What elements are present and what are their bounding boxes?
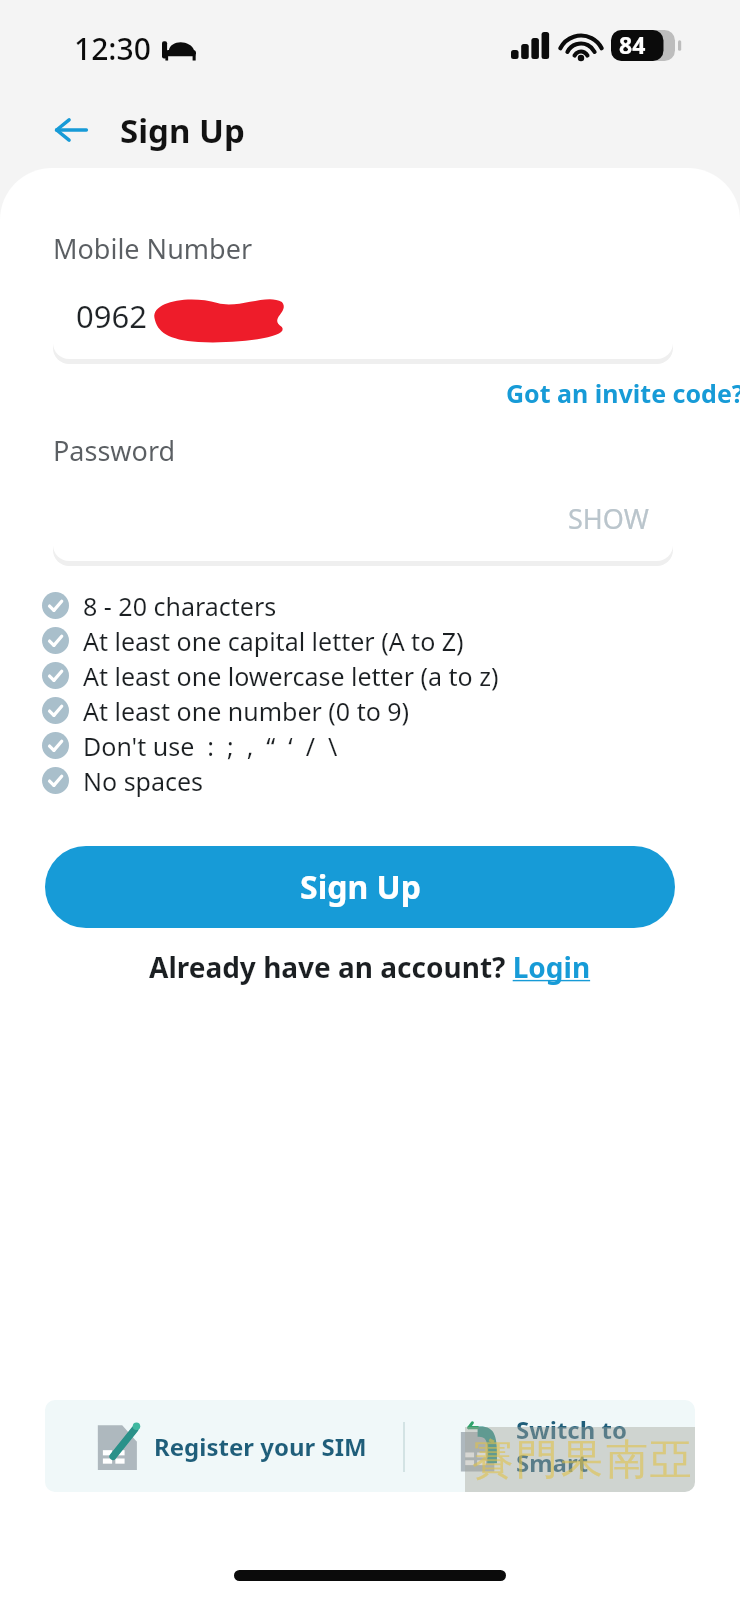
button[interactable]: SHOW	[53, 475, 673, 561]
staticText: 賽	[472, 1434, 514, 1487]
staticText: Got an invite code?	[506, 376, 740, 410]
staticText: 0962	[76, 295, 147, 337]
button[interactable]: Switch to Smart	[460, 1400, 695, 1492]
button[interactable]: SHOW	[568, 500, 649, 537]
staticText: 門	[516, 1434, 558, 1487]
staticText: Sign Up	[120, 108, 245, 153]
staticText: Don't use : ; , “ ‘ / \	[83, 729, 338, 763]
staticText: Password	[53, 432, 176, 469]
button[interactable]: Already have an account? Login	[149, 948, 591, 986]
staticText: 亞	[650, 1434, 692, 1487]
staticText: 12:30	[74, 28, 151, 69]
staticText: 果	[561, 1434, 603, 1487]
staticText: Switch to Smart	[516, 1413, 695, 1479]
staticText: 南	[606, 1434, 648, 1487]
button[interactable]: 0962	[53, 273, 673, 359]
staticText: 8 - 20 characters	[83, 589, 277, 623]
staticText: At least one lowercase letter (a to z)	[83, 659, 499, 693]
button[interactable]: Back	[42, 101, 100, 159]
staticText: No spaces	[83, 764, 204, 798]
button[interactable]: Sign Up	[45, 846, 675, 928]
staticText: At least one number (0 to 9)	[83, 694, 410, 728]
button[interactable]: Register your SIM	[97, 1400, 367, 1492]
staticText: Register your SIM	[154, 1430, 367, 1463]
staticText: Sign Up	[300, 865, 421, 909]
staticText: 84	[619, 29, 646, 60]
button[interactable]: Got an invite code?	[506, 376, 740, 410]
staticText: SHOW	[568, 500, 649, 537]
staticText: Mobile Number	[53, 230, 253, 267]
staticText: Already have an account? Login	[149, 948, 591, 986]
staticText: At least one capital letter (A to Z)	[83, 624, 464, 658]
